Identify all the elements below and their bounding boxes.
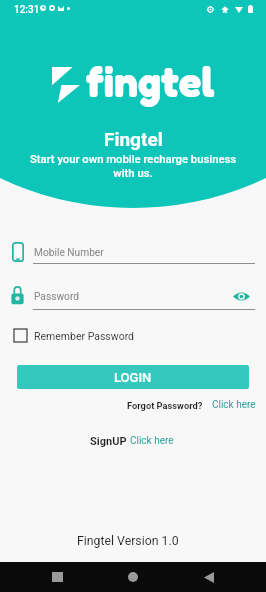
- button[interactable]: Back: [197, 565, 221, 589]
- staticText: LOGIN: [114, 370, 152, 385]
- button[interactable]: Mobile Number field: [12, 240, 255, 266]
- button[interactable]: Show password: [231, 286, 251, 306]
- staticText: Start your own mobile recharge business …: [27, 153, 239, 180]
- button[interactable]: Home: [121, 565, 145, 589]
- staticText: Mobile Number: [34, 247, 104, 259]
- button[interactable]: Remember Password: [14, 329, 135, 342]
- staticText: Remember Password: [34, 330, 135, 342]
- staticText: Click here: [212, 399, 256, 411]
- button[interactable]: LOGIN: [17, 365, 249, 389]
- staticText: Fingtel: [104, 128, 163, 150]
- staticText: Fingtel Version 1.0: [77, 534, 179, 548]
- staticText: Password: [34, 291, 79, 303]
- button[interactable]: Click here: [130, 435, 174, 447]
- staticText: Forgot Password?: [127, 400, 203, 411]
- staticText: 12:31: [14, 4, 40, 16]
- staticText: Click here: [130, 435, 174, 447]
- staticText: SignUP: [90, 435, 127, 448]
- button[interactable]: Click here: [212, 399, 256, 411]
- button[interactable]: Password field: [12, 285, 227, 309]
- staticText: fingtel: [86, 56, 215, 107]
- button[interactable]: Recent apps: [45, 565, 69, 589]
